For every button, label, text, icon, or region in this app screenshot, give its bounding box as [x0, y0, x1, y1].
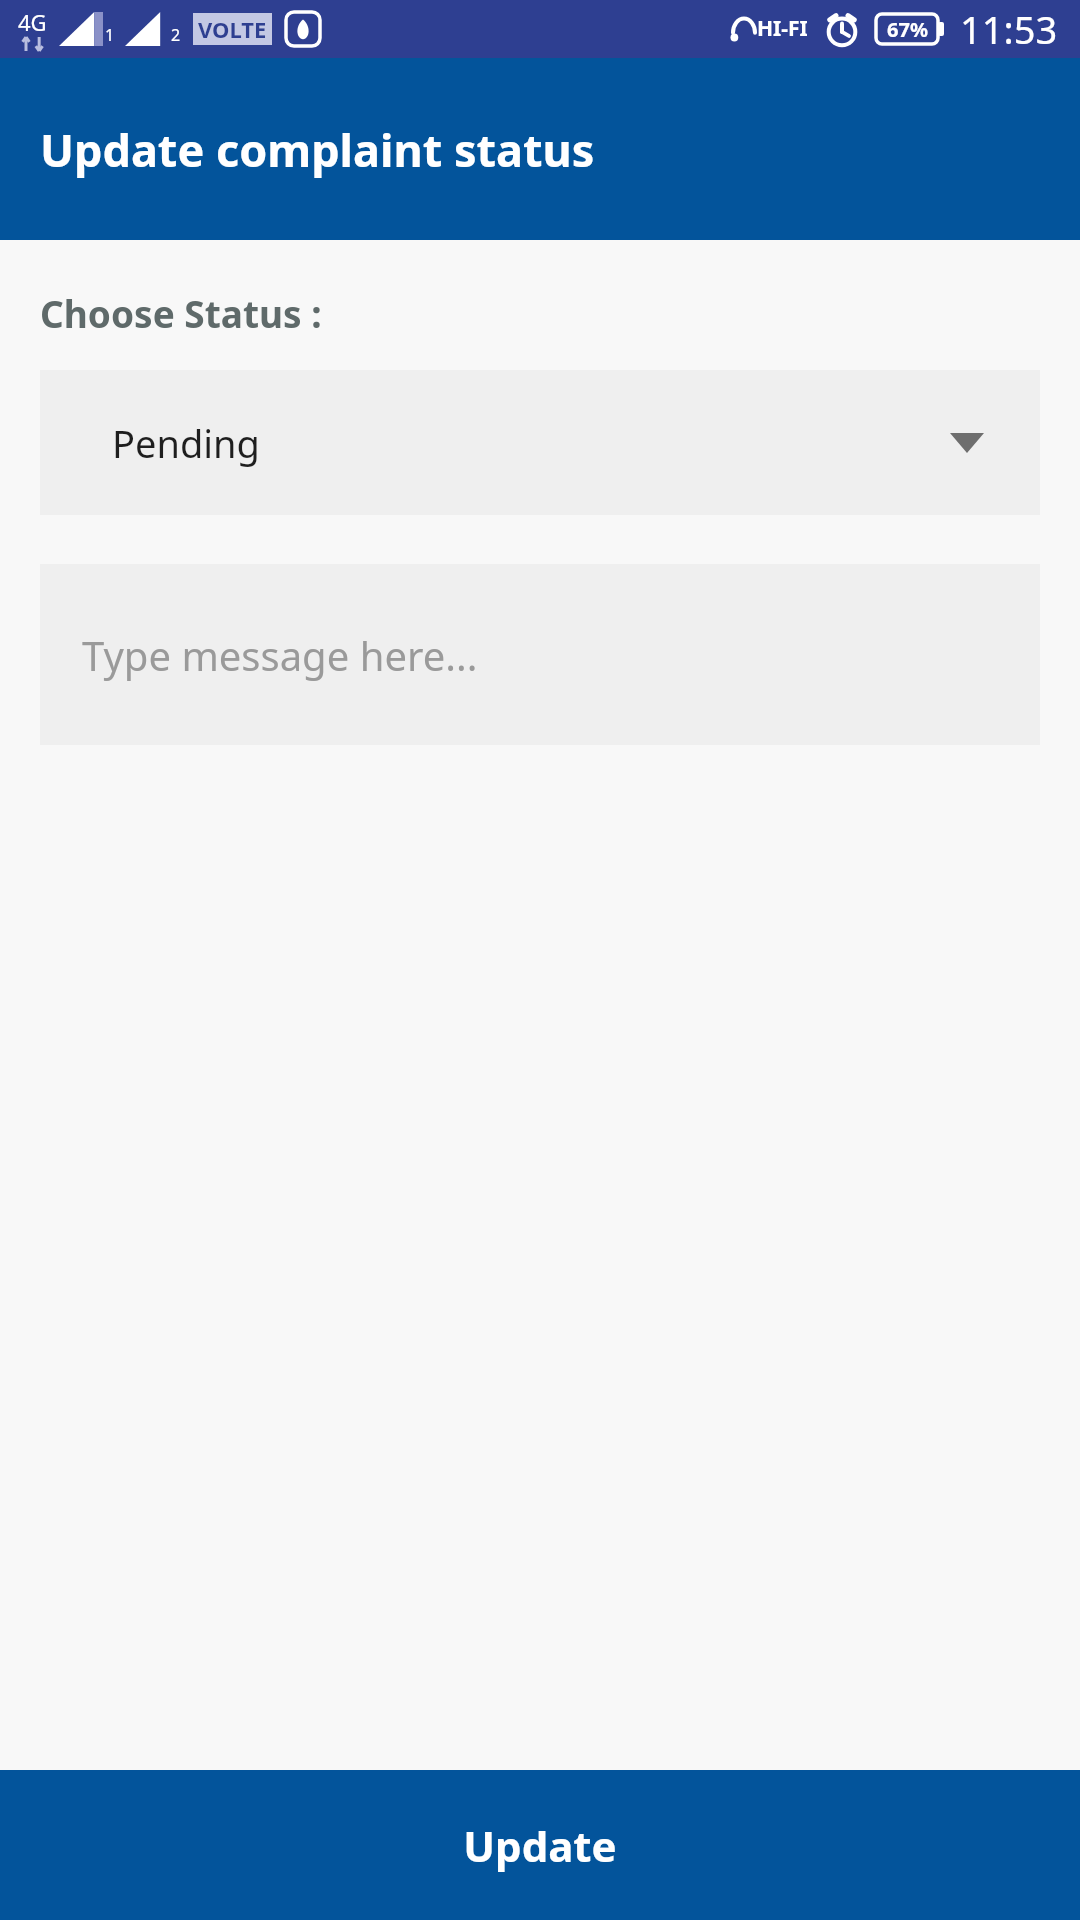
- staticText: 67%: [887, 16, 928, 43]
- staticText: 1: [105, 24, 115, 46]
- button[interactable]: Pending: [40, 370, 1040, 515]
- button[interactable]: Type message here...: [40, 564, 1040, 745]
- staticText: Update: [463, 1817, 617, 1874]
- staticText: Pending: [112, 417, 260, 469]
- staticText: HI-FI: [757, 14, 808, 43]
- staticText: Update complaint status: [40, 119, 595, 180]
- staticText: 11:53: [960, 3, 1058, 55]
- button[interactable]: Update: [0, 1770, 1080, 1920]
- staticText: VOLTE: [198, 14, 267, 44]
- staticText: 4G: [18, 7, 47, 37]
- staticText: Type message here...: [82, 628, 478, 682]
- staticText: 2: [171, 24, 181, 46]
- staticText: Choose Status :: [40, 288, 322, 338]
